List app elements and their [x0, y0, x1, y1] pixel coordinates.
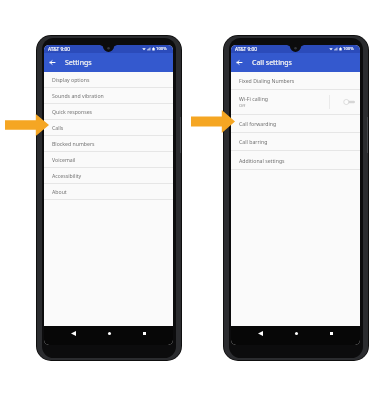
button[interactable]: Display options — [44, 72, 173, 87]
button[interactable]: About — [44, 184, 173, 199]
button[interactable]: Back — [67, 327, 79, 339]
staticText: 100% — [343, 46, 354, 52]
staticText: Calls — [52, 124, 64, 131]
staticText: Wi-Fi calling — [239, 95, 269, 102]
staticText: About — [52, 188, 67, 195]
button[interactable]: Sounds and vibration — [44, 88, 173, 103]
staticText: Quick responses — [52, 108, 93, 115]
button[interactable]: Home — [290, 327, 302, 339]
button[interactable]: Voicemail — [44, 152, 173, 167]
button[interactable]: Call forwarding — [231, 115, 360, 132]
button[interactable]: Additional settings — [231, 151, 360, 169]
button[interactable]: Quick responses — [44, 104, 173, 119]
button[interactable]: Recent apps — [138, 327, 150, 339]
staticText: Blocked numbers — [52, 140, 95, 147]
button[interactable]: Calls — [44, 120, 173, 135]
staticText: AT&T 9:00 — [48, 46, 70, 53]
button[interactable]: Toggle Wi-Fi calling — [342, 98, 355, 106]
button[interactable]: Recent apps — [325, 327, 337, 339]
staticText: Accessibility — [52, 172, 82, 179]
button[interactable]: Navigate up — [234, 57, 245, 68]
staticText: Voicemail — [52, 156, 76, 163]
button[interactable]: Accessibility — [44, 168, 173, 183]
button[interactable]: Fixed Dialing Numbers — [231, 72, 360, 89]
staticText: Fixed Dialing Numbers — [239, 77, 295, 84]
staticText: Call settings — [252, 58, 292, 68]
button[interactable]: Wi-Fi calling — [231, 90, 360, 114]
button[interactable]: Home — [103, 327, 115, 339]
staticText: Call barring — [239, 138, 268, 145]
staticText: Display options — [52, 76, 90, 83]
button[interactable]: Navigate up — [47, 57, 58, 68]
button[interactable]: Call barring — [231, 133, 360, 150]
button[interactable]: Blocked numbers — [44, 136, 173, 151]
staticText: Sounds and vibration — [52, 92, 104, 99]
button[interactable]: Back — [254, 327, 266, 339]
staticText: Settings — [65, 58, 92, 68]
staticText: Call forwarding — [239, 120, 277, 127]
staticText: Additional settings — [239, 157, 285, 164]
staticText: AT&T 9:00 — [235, 46, 257, 53]
staticText: 100% — [156, 46, 167, 52]
staticText: Off — [239, 103, 246, 109]
